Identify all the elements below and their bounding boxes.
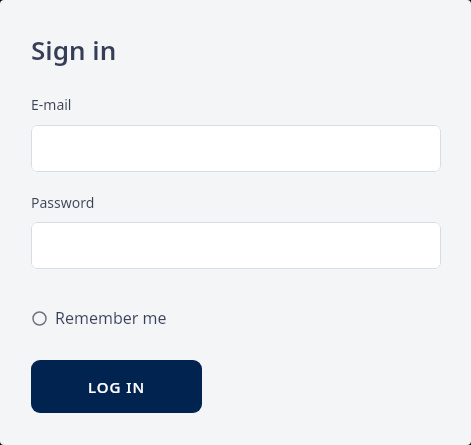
staticText: E-mail [31, 95, 72, 114]
staticText: Sign in [31, 32, 117, 67]
button[interactable]: LOG IN [31, 360, 202, 413]
button[interactable] [31, 222, 441, 269]
button[interactable] [31, 125, 441, 172]
button[interactable]: Remember me [31, 307, 167, 329]
staticText: LOG IN [88, 377, 146, 397]
staticText: Password [31, 193, 95, 212]
staticText: Remember me [55, 307, 167, 329]
